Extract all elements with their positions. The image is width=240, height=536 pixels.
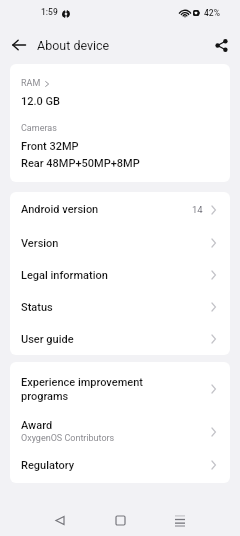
button[interactable]: Share <box>209 33 233 57</box>
button[interactable]: Award <box>10 416 230 447</box>
staticText: Status <box>21 301 53 314</box>
staticText: 12.0 GB <box>21 95 60 108</box>
staticText: 14 <box>192 204 203 215</box>
staticText: Front 32MP <box>21 140 79 153</box>
button[interactable]: Home <box>102 502 138 536</box>
button[interactable]: Recent apps <box>162 502 198 536</box>
staticText: OxygenOS Contributors <box>21 433 115 444</box>
button[interactable]: Legal information <box>10 259 230 291</box>
staticText: 1:59 <box>41 7 58 17</box>
button[interactable]: Android version <box>10 192 230 227</box>
staticText: Android version <box>21 203 99 216</box>
staticText: Award <box>21 419 53 432</box>
staticText: RAM <box>21 78 41 89</box>
staticText: Regulatory <box>21 459 75 472</box>
button[interactable]: Version <box>10 227 230 259</box>
staticText: 42% <box>204 8 220 18</box>
button[interactable]: User guide <box>10 323 230 355</box>
button[interactable]: Back <box>7 33 31 57</box>
button[interactable]: Regulatory <box>10 447 230 483</box>
button[interactable]: Experience improvement programs <box>10 362 230 416</box>
staticText: Rear 48MP+50MP+8MP <box>21 157 140 170</box>
staticText: Legal information <box>21 269 108 282</box>
button[interactable]: Back <box>42 502 78 536</box>
staticText: About device <box>37 38 110 53</box>
staticText: Cameras <box>21 123 57 134</box>
button[interactable]: Status <box>10 291 230 323</box>
staticText: Version <box>21 237 59 250</box>
staticText: User guide <box>21 333 74 346</box>
staticText: Experience improvement programs <box>21 376 143 403</box>
